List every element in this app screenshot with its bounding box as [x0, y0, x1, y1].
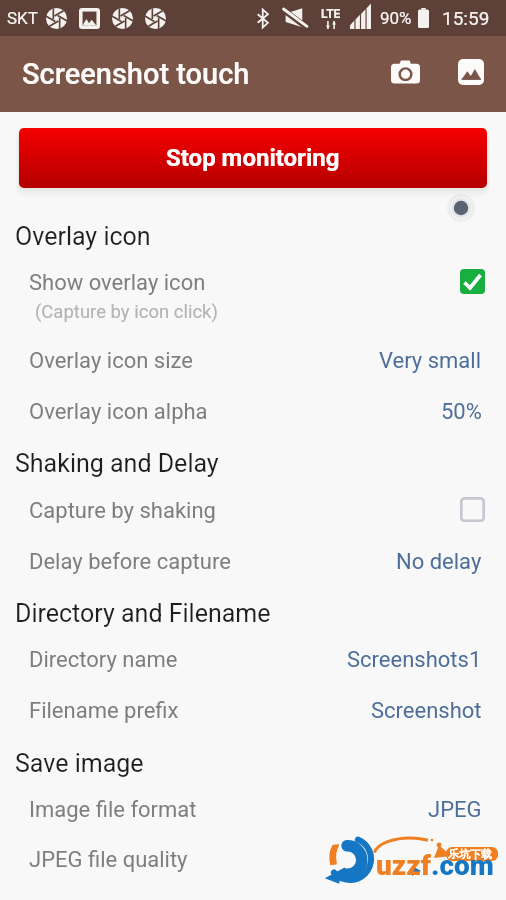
button[interactable]: Overlay icon: [0, 209, 506, 263]
button[interactable]: Take screenshot: [381, 48, 429, 96]
button[interactable]: JPEG file quality: [0, 837, 506, 883]
staticText: No delay: [396, 549, 482, 575]
staticText: LTE: [321, 7, 341, 21]
staticText: Delay before capture: [29, 549, 231, 575]
staticText: Filename prefix: [29, 698, 179, 724]
staticText: Image file format: [29, 797, 197, 823]
staticText: Overlay icon: [15, 222, 151, 251]
staticText: (Capture by icon click): [35, 301, 218, 323]
button[interactable]: Image file format: [0, 787, 506, 833]
button[interactable]: Capture by shaking: [0, 488, 506, 534]
staticText: Directory and Filename: [15, 599, 271, 628]
button[interactable]: Directory and Filename: [0, 586, 506, 640]
staticText: Show overlay icon: [29, 270, 206, 296]
button[interactable]: Shaking and Delay: [0, 436, 506, 490]
staticText: JPEG: [428, 797, 482, 823]
button[interactable]: Stop monitoring: [19, 128, 487, 188]
staticText: .com: [431, 849, 494, 882]
staticText: 15:59: [442, 7, 490, 29]
staticText: uzzf: [376, 849, 431, 882]
staticText: Screenshot touch: [22, 57, 250, 91]
staticText: 乐坑下载: [448, 847, 492, 861]
button[interactable]: Overlay icon alpha: [0, 389, 506, 435]
button[interactable]: Save image: [0, 736, 506, 790]
button[interactable]: Directory name: [0, 637, 506, 683]
button[interactable]: Overlay icon size: [0, 338, 506, 384]
staticText: Shaking and Delay: [15, 449, 219, 478]
staticText: 50%: [441, 399, 482, 425]
button[interactable]: Show overlay icon: [0, 260, 506, 306]
staticText: Screenshot: [371, 698, 482, 724]
staticText: Screenshots1: [347, 647, 482, 673]
staticText: Save image: [15, 749, 144, 778]
button[interactable]: Filename prefix: [0, 688, 506, 734]
staticText: Very small: [379, 348, 482, 374]
staticText: Overlay icon size: [29, 348, 193, 374]
staticText: Directory name: [29, 647, 178, 673]
staticText: Overlay icon alpha: [29, 399, 208, 425]
button[interactable]: Delay before capture: [0, 539, 506, 585]
staticText: Capture by shaking: [29, 498, 216, 524]
staticText: JPEG file quality: [29, 847, 188, 873]
staticText: Stop monitoring: [166, 144, 340, 172]
button[interactable]: Open gallery: [447, 48, 495, 96]
staticText: SKT: [7, 8, 38, 28]
staticText: 90%: [380, 8, 412, 28]
